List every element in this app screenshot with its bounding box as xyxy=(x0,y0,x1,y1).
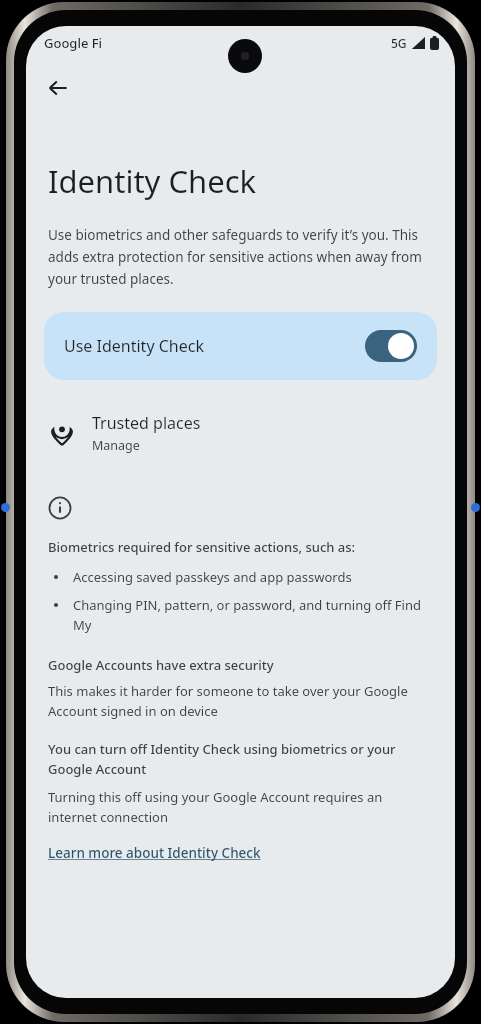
staticText: Trusted places xyxy=(92,412,201,434)
button[interactable]: Use Identity Check toggle xyxy=(365,330,417,362)
button[interactable]: Learn more about Identity Check xyxy=(48,844,261,862)
staticText: Accessing saved passkeys and app passwor… xyxy=(73,568,352,586)
staticText: Use Identity Check xyxy=(64,335,365,357)
button[interactable]: Use Identity Check xyxy=(44,312,437,380)
staticText: Google Accounts have extra security xyxy=(48,656,274,674)
staticText: You can turn off Identity Check using bi… xyxy=(48,740,437,778)
button[interactable]: Trusted places xyxy=(26,402,455,464)
staticText: Identity Check xyxy=(48,160,257,202)
staticText: Google Fi xyxy=(44,34,103,52)
button[interactable]: Back xyxy=(34,64,82,112)
staticText: Manage xyxy=(92,437,140,454)
staticText: Turning this off using your Google Accou… xyxy=(48,788,433,826)
staticText: This makes it harder for someone to take… xyxy=(48,682,429,720)
staticText: Biometrics required for sensitive action… xyxy=(48,538,356,556)
staticText: Use biometrics and other safeguards to v… xyxy=(48,226,435,288)
staticText: Changing PIN, pattern, or password, and … xyxy=(73,596,435,634)
staticText: Learn more about Identity Check xyxy=(48,844,261,862)
staticText: 5G xyxy=(391,35,407,51)
